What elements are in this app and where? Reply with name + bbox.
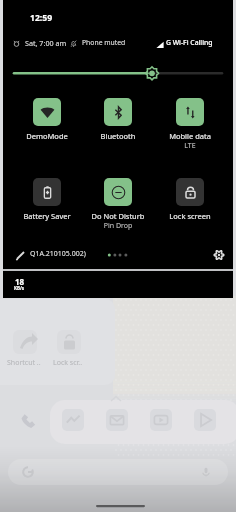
button[interactable]: Settings xyxy=(209,245,229,265)
staticText: Q1A.210105.002) xyxy=(30,249,86,259)
button[interactable]: DemoMode xyxy=(11,96,83,152)
staticText: Lock screen xyxy=(154,211,226,221)
staticText: Sat, 7:00 am xyxy=(25,38,67,48)
staticText: Battery Saver xyxy=(11,211,83,221)
button[interactable]: chart xyxy=(62,409,84,431)
staticText: KB/s xyxy=(14,285,25,291)
staticText: Bluetooth xyxy=(82,131,154,141)
button[interactable]: Lock screen xyxy=(154,176,226,232)
button[interactable]: mail xyxy=(106,409,128,431)
staticText: Shortcut .. xyxy=(7,358,41,368)
staticText: LTE xyxy=(154,141,226,151)
staticText: G Wi-Fi Calling xyxy=(166,38,213,47)
staticText: Do Not Disturb xyxy=(82,211,154,221)
button[interactable]: play xyxy=(194,409,216,431)
staticText: 12:59 xyxy=(30,12,53,24)
button[interactable]: Battery Saver xyxy=(11,176,83,232)
button[interactable]: Edit tiles xyxy=(11,246,29,264)
button[interactable]: video xyxy=(150,409,172,431)
staticText: 18 xyxy=(15,276,25,287)
button[interactable]: Do Not Disturb xyxy=(82,176,154,232)
staticText: DemoMode xyxy=(11,131,83,141)
button[interactable]: phone xyxy=(18,409,40,431)
button[interactable]: Mobile data xyxy=(154,96,226,152)
staticText: Phone muted xyxy=(82,38,126,47)
staticText: Pin Drop xyxy=(82,221,154,231)
staticText: Lock scr.. xyxy=(53,358,83,368)
button[interactable]: Search xyxy=(8,459,228,485)
button[interactable]: Bluetooth xyxy=(82,96,154,152)
staticText: Mobile data xyxy=(154,131,226,141)
